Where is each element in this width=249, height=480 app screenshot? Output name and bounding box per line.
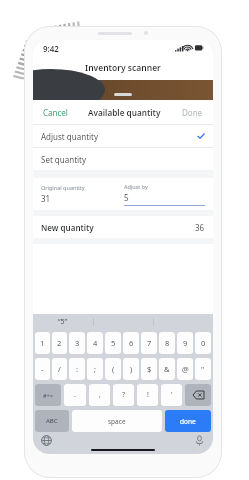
- button[interactable]: ': [161, 384, 182, 406]
- staticText: (: [112, 364, 115, 374]
- staticText: !: [147, 390, 149, 400]
- button[interactable]: $: [141, 358, 157, 380]
- button[interactable]: Set quantity: [33, 148, 213, 170]
- button[interactable]: 0: [195, 332, 211, 354]
- button[interactable]: Dictate: [194, 435, 205, 446]
- staticText: 7: [147, 338, 152, 348]
- staticText: 1: [40, 338, 45, 348]
- staticText: 31: [41, 193, 51, 204]
- button[interactable]: 1: [35, 332, 50, 354]
- staticText: ): [130, 364, 133, 374]
- button[interactable]: ": [195, 358, 211, 380]
- button[interactable]: Adjust by: [124, 183, 205, 206]
- staticText: 0: [201, 338, 206, 348]
- button[interactable]: Cancel: [41, 104, 70, 121]
- button[interactable]: 8: [159, 332, 175, 354]
- button[interactable]: ?: [113, 384, 134, 406]
- staticText: Cancel: [43, 107, 68, 118]
- staticText: space: [108, 417, 126, 426]
- staticText: 2: [57, 338, 62, 348]
- staticText: ABC: [46, 417, 58, 425]
- button[interactable]: ABC: [35, 410, 69, 432]
- staticText: .: [74, 390, 76, 400]
- staticText: ': [171, 390, 173, 400]
- button[interactable]: 7: [141, 332, 157, 354]
- staticText: /: [58, 364, 61, 374]
- button[interactable]: (: [105, 358, 121, 380]
- button[interactable]: Change keyboard: [41, 435, 52, 446]
- button[interactable]: !: [137, 384, 158, 406]
- button[interactable]: /: [52, 358, 67, 380]
- staticText: Available quantity: [88, 107, 161, 118]
- staticText: 5: [124, 192, 129, 203]
- staticText: :: [76, 364, 79, 374]
- button[interactable]: ): [123, 358, 139, 380]
- staticText: 36: [195, 222, 205, 233]
- staticText: 5: [111, 338, 116, 348]
- button[interactable]: 5: [105, 332, 121, 354]
- button[interactable]: Adjust quantity: [33, 125, 213, 147]
- staticText: done: [180, 417, 196, 426]
- staticText: 8: [165, 338, 170, 348]
- staticText: $: [147, 364, 152, 374]
- staticText: Set quantity: [41, 154, 87, 165]
- staticText: 9:42: [43, 43, 59, 54]
- button[interactable]: “5”: [33, 314, 93, 329]
- staticText: Inventory scanner: [85, 62, 161, 74]
- button[interactable]: 9: [177, 332, 193, 354]
- staticText: Adjust by: [124, 183, 148, 190]
- staticText: ;: [94, 364, 97, 374]
- button[interactable]: Backspace: [185, 384, 211, 406]
- button[interactable]: &: [159, 358, 175, 380]
- button[interactable]: ,: [89, 384, 110, 406]
- button[interactable]: :: [69, 358, 85, 380]
- button[interactable]: @: [177, 358, 193, 380]
- staticText: Done: [182, 107, 203, 118]
- staticText: Adjust quantity: [41, 131, 99, 142]
- staticText: Original quantity: [41, 184, 85, 191]
- staticText: 4: [93, 338, 98, 348]
- button[interactable]: space: [72, 410, 162, 432]
- staticText: ,: [99, 390, 101, 400]
- button[interactable]: ;: [87, 358, 103, 380]
- button[interactable]: .: [64, 384, 86, 406]
- staticText: -: [41, 364, 44, 374]
- staticText: ?: [122, 390, 126, 400]
- button[interactable]: -: [35, 358, 50, 380]
- staticText: 9: [183, 338, 188, 348]
- staticText: 6: [129, 338, 134, 348]
- button[interactable]: 2: [52, 332, 67, 354]
- staticText: ": [201, 364, 205, 374]
- button[interactable]: done: [165, 410, 211, 432]
- button[interactable]: Done: [180, 104, 205, 121]
- button[interactable]: #+=: [35, 384, 61, 406]
- staticText: &: [164, 364, 170, 374]
- staticText: #+=: [43, 392, 53, 399]
- button[interactable]: Original quantity: [41, 184, 114, 204]
- staticText: 3: [75, 338, 80, 348]
- staticText: @: [182, 364, 189, 374]
- button[interactable]: 4: [87, 332, 103, 354]
- staticText: New quantity: [41, 222, 94, 233]
- button[interactable]: 6: [123, 332, 139, 354]
- staticText: “5”: [58, 317, 68, 327]
- button[interactable]: 3: [69, 332, 85, 354]
